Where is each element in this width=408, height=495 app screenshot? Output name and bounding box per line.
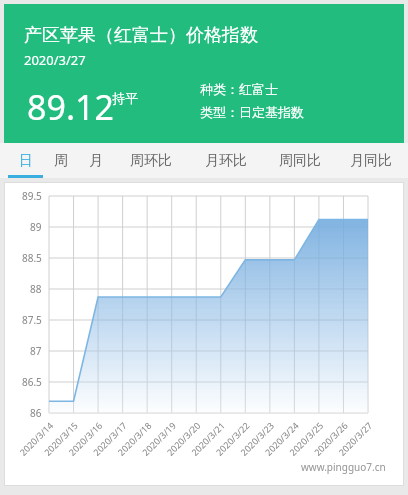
staticText: 类型：日定基指数: [200, 104, 304, 120]
staticText: 2020/3/27: [24, 51, 86, 69]
staticText: 周: [54, 152, 68, 170]
staticText: 种类：红富士: [200, 81, 278, 97]
button[interactable]: 月: [83, 143, 108, 178]
staticText: 月同比: [350, 152, 392, 170]
staticText: 月环比: [205, 152, 247, 170]
button[interactable]: 周同比: [272, 143, 327, 178]
button[interactable]: 月环比: [198, 143, 253, 178]
staticText: 日: [19, 152, 33, 170]
staticText: 月: [89, 152, 103, 170]
staticText: 周同比: [279, 152, 321, 170]
staticText: 89.12: [27, 84, 114, 130]
button[interactable]: 日: [13, 143, 38, 178]
button[interactable]: 月同比: [343, 143, 398, 178]
staticText: 持平: [112, 90, 138, 106]
staticText: 产区苹果（红富士）价格指数: [24, 24, 258, 47]
staticText: 周环比: [130, 152, 172, 170]
button[interactable]: 周: [48, 143, 73, 178]
button[interactable]: 周环比: [123, 143, 178, 178]
